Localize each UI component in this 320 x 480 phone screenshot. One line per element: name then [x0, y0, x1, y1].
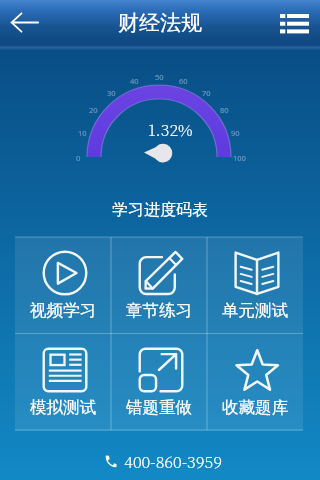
- button[interactable]: Back: [0, 0, 50, 46]
- button[interactable]: 模拟测试: [15, 334, 111, 431]
- staticText: 30: [107, 88, 116, 98]
- staticText: 10: [78, 128, 87, 138]
- button[interactable]: 章节练习: [111, 237, 207, 334]
- button[interactable]: Menu: [280, 0, 320, 46]
- staticText: 400-860-3959: [116, 450, 223, 471]
- staticText: 错题重做: [126, 397, 192, 417]
- staticText: 20: [89, 105, 98, 115]
- staticText: 40: [130, 76, 139, 86]
- button[interactable]: 错题重做: [111, 334, 207, 431]
- button[interactable]: 400-860-3959: [104, 450, 223, 471]
- staticText: 1.32%: [148, 118, 193, 141]
- staticText: 90: [231, 128, 240, 138]
- button[interactable]: 单元测试: [207, 237, 303, 334]
- staticText: 视频学习: [30, 300, 96, 320]
- staticText: 70: [202, 88, 211, 98]
- staticText: 0: [76, 153, 81, 163]
- staticText: 章节练习: [126, 300, 192, 320]
- staticText: 100: [233, 153, 246, 163]
- staticText: 学习进度码表: [112, 200, 208, 218]
- staticText: 60: [179, 76, 188, 86]
- staticText: 50: [155, 72, 164, 82]
- staticText: 模拟测试: [30, 397, 96, 417]
- staticText: 财经法规: [118, 10, 202, 36]
- button[interactable]: 收藏题库: [207, 334, 303, 431]
- staticText: 收藏题库: [222, 397, 288, 417]
- staticText: 80: [220, 105, 229, 115]
- staticText: 单元测试: [222, 300, 288, 320]
- button[interactable]: 视频学习: [15, 237, 111, 334]
